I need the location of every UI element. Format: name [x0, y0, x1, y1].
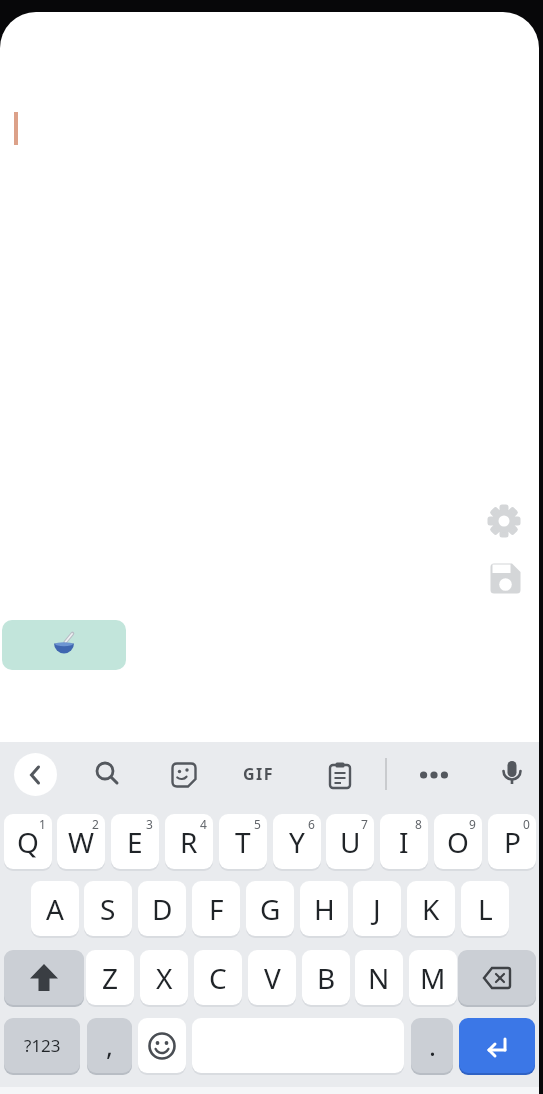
- button[interactable]: [138, 1018, 186, 1073]
- staticText: 4: [200, 816, 207, 832]
- button[interactable]: C: [194, 950, 242, 1005]
- button[interactable]: [93, 760, 121, 788]
- button[interactable]: G: [246, 881, 294, 936]
- staticText: A: [46, 890, 64, 928]
- button[interactable]: [170, 761, 198, 789]
- button[interactable]: [14, 753, 57, 796]
- button[interactable]: O: [434, 814, 482, 869]
- button[interactable]: Q: [4, 814, 52, 869]
- staticText: ,: [106, 1028, 113, 1063]
- staticText: Y: [289, 823, 305, 861]
- staticText: I: [399, 823, 409, 861]
- staticText: Q: [17, 823, 39, 861]
- button[interactable]: [489, 562, 522, 595]
- staticText: L: [478, 890, 493, 928]
- staticText: 0: [523, 816, 530, 832]
- button[interactable]: [4, 950, 84, 1005]
- button[interactable]: M: [409, 950, 457, 1005]
- staticText: 9: [469, 816, 476, 832]
- staticText: V: [264, 959, 281, 997]
- button[interactable]: F: [192, 881, 240, 936]
- staticText: B: [317, 959, 336, 997]
- staticText: T: [235, 823, 251, 861]
- button[interactable]: R: [165, 814, 213, 869]
- staticText: H: [314, 890, 335, 928]
- button[interactable]: V: [248, 950, 296, 1005]
- button[interactable]: [420, 761, 448, 789]
- staticText: J: [373, 890, 381, 928]
- button[interactable]: W: [57, 814, 105, 869]
- staticText: 3: [146, 816, 153, 832]
- button[interactable]: [2, 620, 126, 670]
- button[interactable]: J: [353, 881, 401, 936]
- staticText: M: [420, 959, 446, 997]
- staticText: F: [209, 890, 224, 928]
- staticText: 7: [361, 816, 368, 832]
- button[interactable]: S: [84, 881, 132, 936]
- button[interactable]: [487, 504, 521, 538]
- button[interactable]: [326, 761, 354, 789]
- staticText: X: [156, 959, 173, 997]
- staticText: .: [429, 1028, 436, 1063]
- staticText: U: [340, 823, 361, 861]
- staticText: R: [180, 823, 198, 861]
- staticText: 2: [92, 816, 99, 832]
- button[interactable]: A: [31, 881, 79, 936]
- staticText: G: [260, 890, 281, 928]
- staticText: D: [152, 890, 173, 928]
- button[interactable]: P: [488, 814, 536, 869]
- staticText: E: [127, 823, 143, 861]
- staticText: ?123: [24, 1034, 61, 1057]
- staticText: Z: [102, 959, 119, 997]
- staticText: GIF: [243, 763, 275, 785]
- button[interactable]: T: [219, 814, 267, 869]
- button[interactable]: L: [461, 881, 509, 936]
- staticText: K: [422, 890, 440, 928]
- button[interactable]: X: [140, 950, 188, 1005]
- staticText: S: [100, 890, 116, 928]
- button[interactable]: U: [326, 814, 374, 869]
- staticText: 5: [254, 816, 261, 832]
- button[interactable]: B: [302, 950, 350, 1005]
- staticText: O: [447, 823, 469, 861]
- button[interactable]: N: [355, 950, 403, 1005]
- button[interactable]: K: [407, 881, 455, 936]
- staticText: C: [209, 959, 227, 997]
- button[interactable]: .: [411, 1018, 453, 1073]
- button[interactable]: D: [138, 881, 186, 936]
- button[interactable]: [458, 950, 536, 1005]
- button[interactable]: Z: [86, 950, 134, 1005]
- button[interactable]: H: [300, 881, 348, 936]
- staticText: P: [504, 823, 521, 861]
- button[interactable]: ,: [87, 1018, 132, 1073]
- button[interactable]: E: [111, 814, 159, 869]
- button[interactable]: I: [380, 814, 428, 869]
- staticText: 8: [415, 816, 422, 832]
- button[interactable]: GIF: [234, 762, 284, 786]
- button[interactable]: [498, 760, 526, 788]
- staticText: 6: [308, 816, 315, 832]
- button[interactable]: ?123: [4, 1018, 80, 1073]
- staticText: W: [68, 823, 95, 861]
- staticText: N: [368, 959, 390, 997]
- staticText: 1: [39, 816, 46, 832]
- button[interactable]: Y: [273, 814, 321, 869]
- button[interactable]: [459, 1018, 535, 1073]
